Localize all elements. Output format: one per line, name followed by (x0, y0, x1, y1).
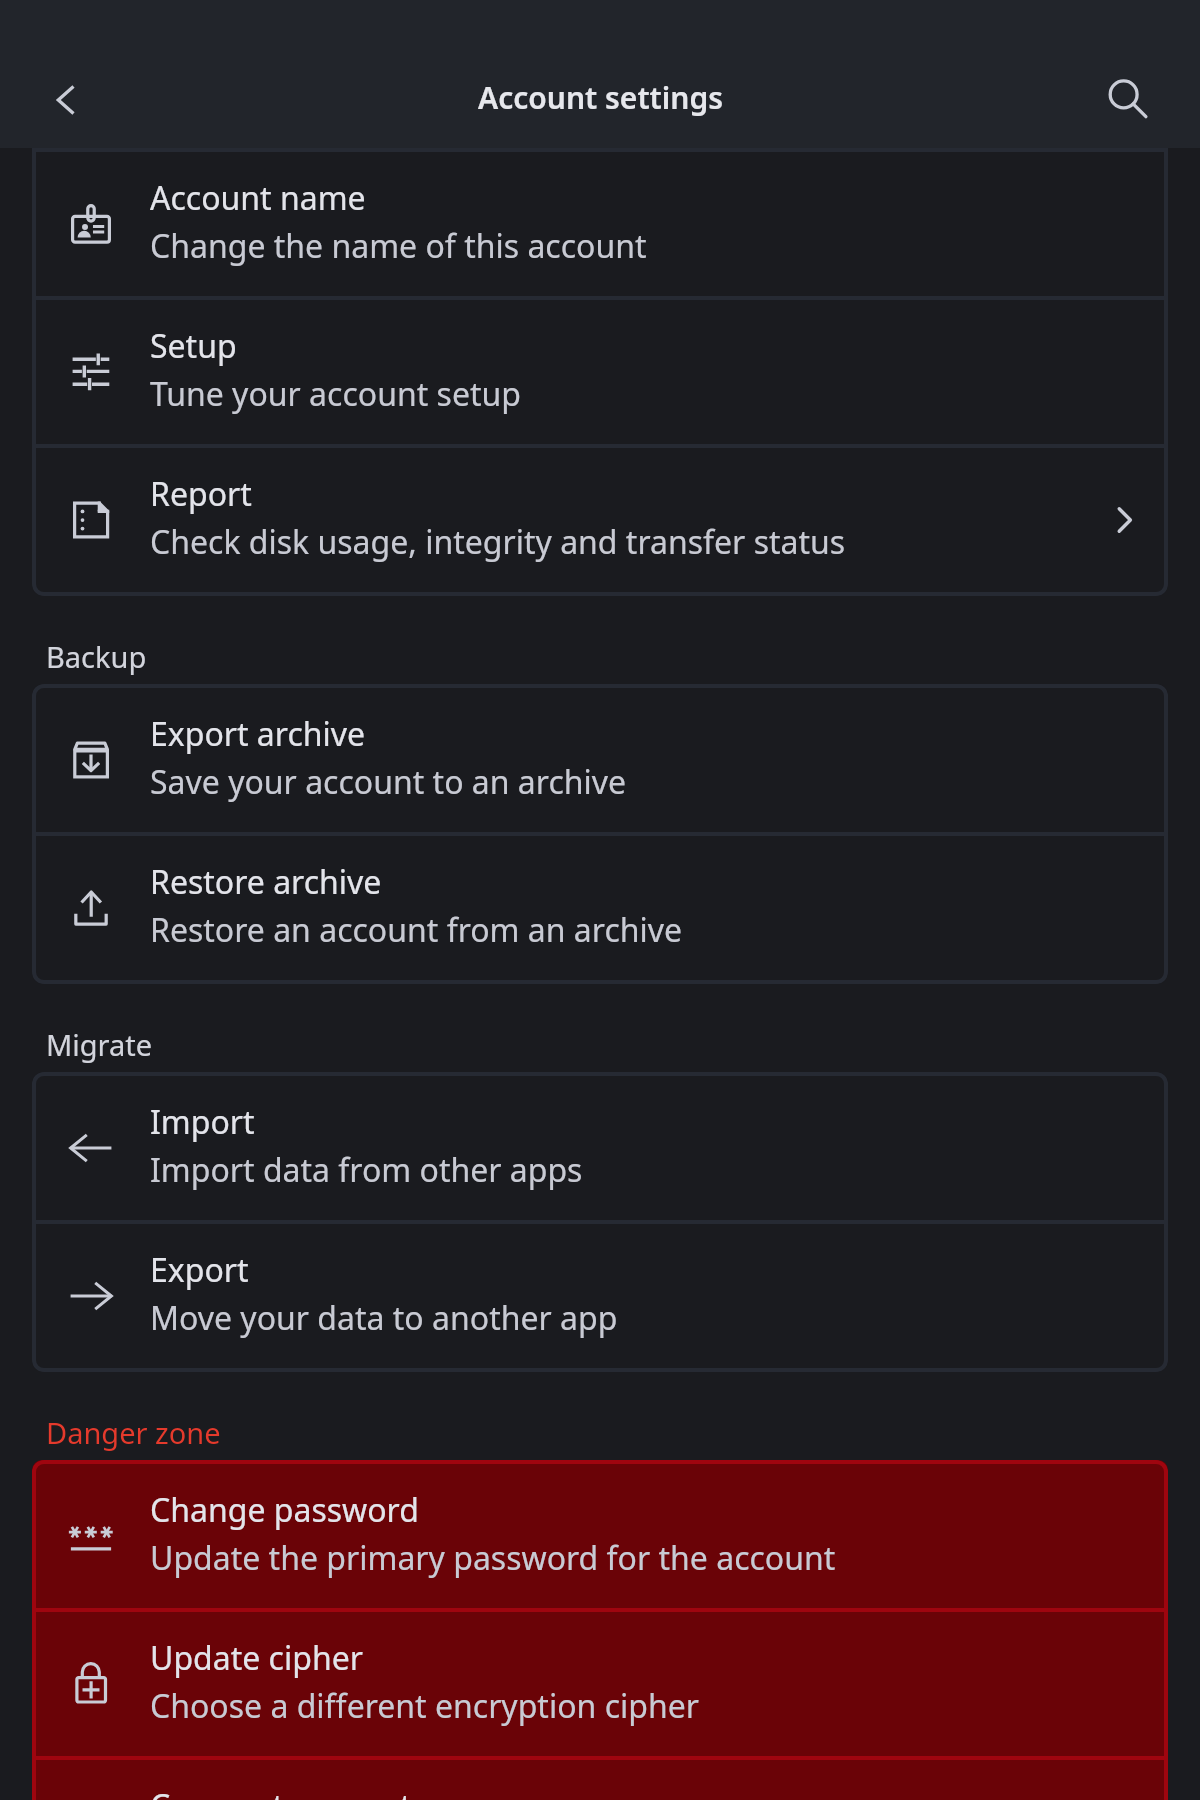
staticText: Restore an account from an archive (150, 908, 683, 952)
staticText: Restore archive (150, 860, 382, 904)
staticText: Import data from other apps (150, 1148, 583, 1192)
staticText: Export (150, 1248, 249, 1292)
staticText: Import (150, 1100, 255, 1144)
button[interactable]: Search (1085, 58, 1169, 142)
button[interactable]: Account name (32, 150, 1168, 298)
staticText: Choose a different encryption cipher (150, 1684, 699, 1728)
staticText: Account name (150, 176, 366, 220)
button[interactable]: Change password (32, 1462, 1168, 1610)
staticText: Move your data to another app (150, 1296, 618, 1340)
staticText: Setup (150, 324, 237, 368)
staticText: Update the primary password for the acco… (150, 1536, 836, 1580)
staticText: Export archive (150, 712, 366, 756)
button[interactable]: Export archive (32, 686, 1168, 834)
staticText: Report (150, 472, 252, 516)
staticText: Backup (46, 637, 147, 676)
staticText: Migrate (46, 1025, 153, 1064)
staticText: Change password (150, 1488, 419, 1532)
staticText: Change the name of this account (150, 224, 647, 268)
staticText: Account settings (478, 77, 723, 118)
staticText: Save your account to an archive (150, 760, 627, 804)
staticText: Compact account (150, 1784, 412, 1800)
button[interactable]: Report (32, 446, 1168, 594)
staticText: Danger zone (46, 1413, 221, 1452)
button[interactable]: Export (32, 1222, 1168, 1370)
button[interactable]: Compact account (32, 1758, 1168, 1800)
button[interactable]: Update cipher (32, 1610, 1168, 1758)
button[interactable]: Setup (32, 298, 1168, 446)
staticText: Check disk usage, integrity and transfer… (150, 520, 846, 564)
staticText: Tune your account setup (150, 372, 521, 416)
button[interactable]: Import (32, 1074, 1168, 1222)
staticText: Update cipher (150, 1636, 363, 1680)
button[interactable]: Restore archive (32, 834, 1168, 982)
button[interactable]: Back (30, 58, 114, 142)
